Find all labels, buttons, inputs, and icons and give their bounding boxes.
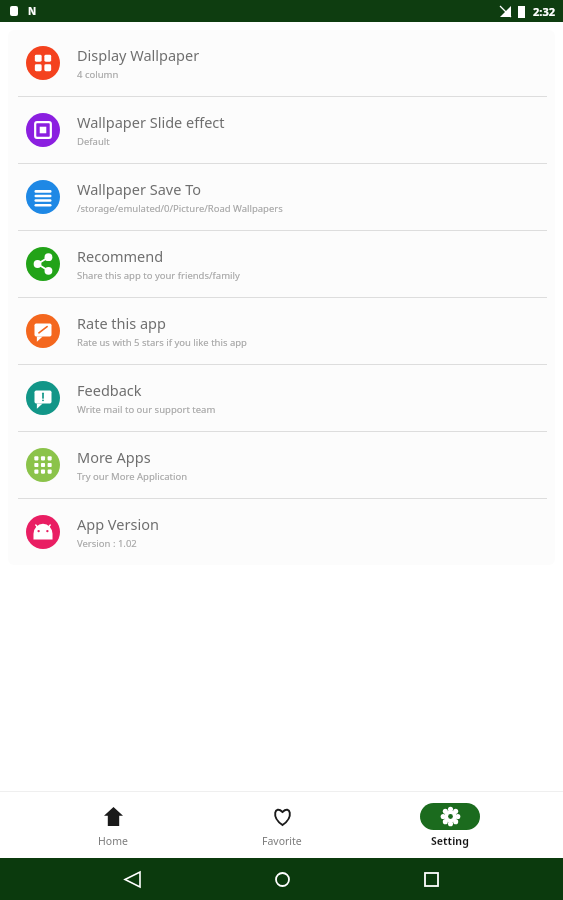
button[interactable]: Feedback [8, 365, 555, 432]
button[interactable]: Setting [395, 797, 505, 854]
staticText: Version : 1.02 [77, 537, 137, 550]
button[interactable]: Wallpaper Save To [8, 164, 555, 231]
staticText: Write mail to our support team [77, 403, 216, 416]
staticText: Home [98, 834, 128, 848]
button[interactable]: Recommend [8, 231, 555, 298]
staticText: Wallpaper Save To [77, 179, 201, 199]
staticText: Default [77, 135, 110, 148]
button[interactable]: App Version [8, 499, 555, 565]
staticText: Favorite [262, 834, 302, 848]
staticText: /storage/emulated/0/Picture/Road Wallpap… [77, 202, 283, 215]
button[interactable]: Back [115, 862, 149, 896]
staticText: Try our More Application [77, 470, 188, 483]
staticText: Wallpaper Slide effect [77, 112, 225, 132]
staticText: More Apps [77, 447, 151, 467]
staticText: Feedback [77, 380, 142, 400]
button[interactable]: Home [265, 862, 299, 896]
staticText: Rate us with 5 stars if you like this ap… [77, 336, 247, 349]
staticText: Share this app to your friends/family [77, 269, 240, 282]
button[interactable]: Favorite [227, 797, 337, 854]
staticText: Rate this app [77, 313, 166, 333]
staticText: 2:32 [533, 4, 555, 19]
button[interactable]: Home [58, 797, 168, 854]
staticText: Display Wallpaper [77, 45, 200, 65]
staticText: 4 column [77, 68, 119, 81]
staticText: N [28, 4, 37, 18]
staticText: Setting [431, 834, 469, 848]
button[interactable]: Wallpaper Slide effect [8, 97, 555, 164]
button[interactable]: More Apps [8, 432, 555, 499]
staticText: App Version [77, 514, 159, 534]
button[interactable]: Display Wallpaper [8, 30, 555, 97]
button[interactable]: Rate this app [8, 298, 555, 365]
staticText: Recommend [77, 246, 164, 266]
button[interactable]: Recents [414, 862, 448, 896]
